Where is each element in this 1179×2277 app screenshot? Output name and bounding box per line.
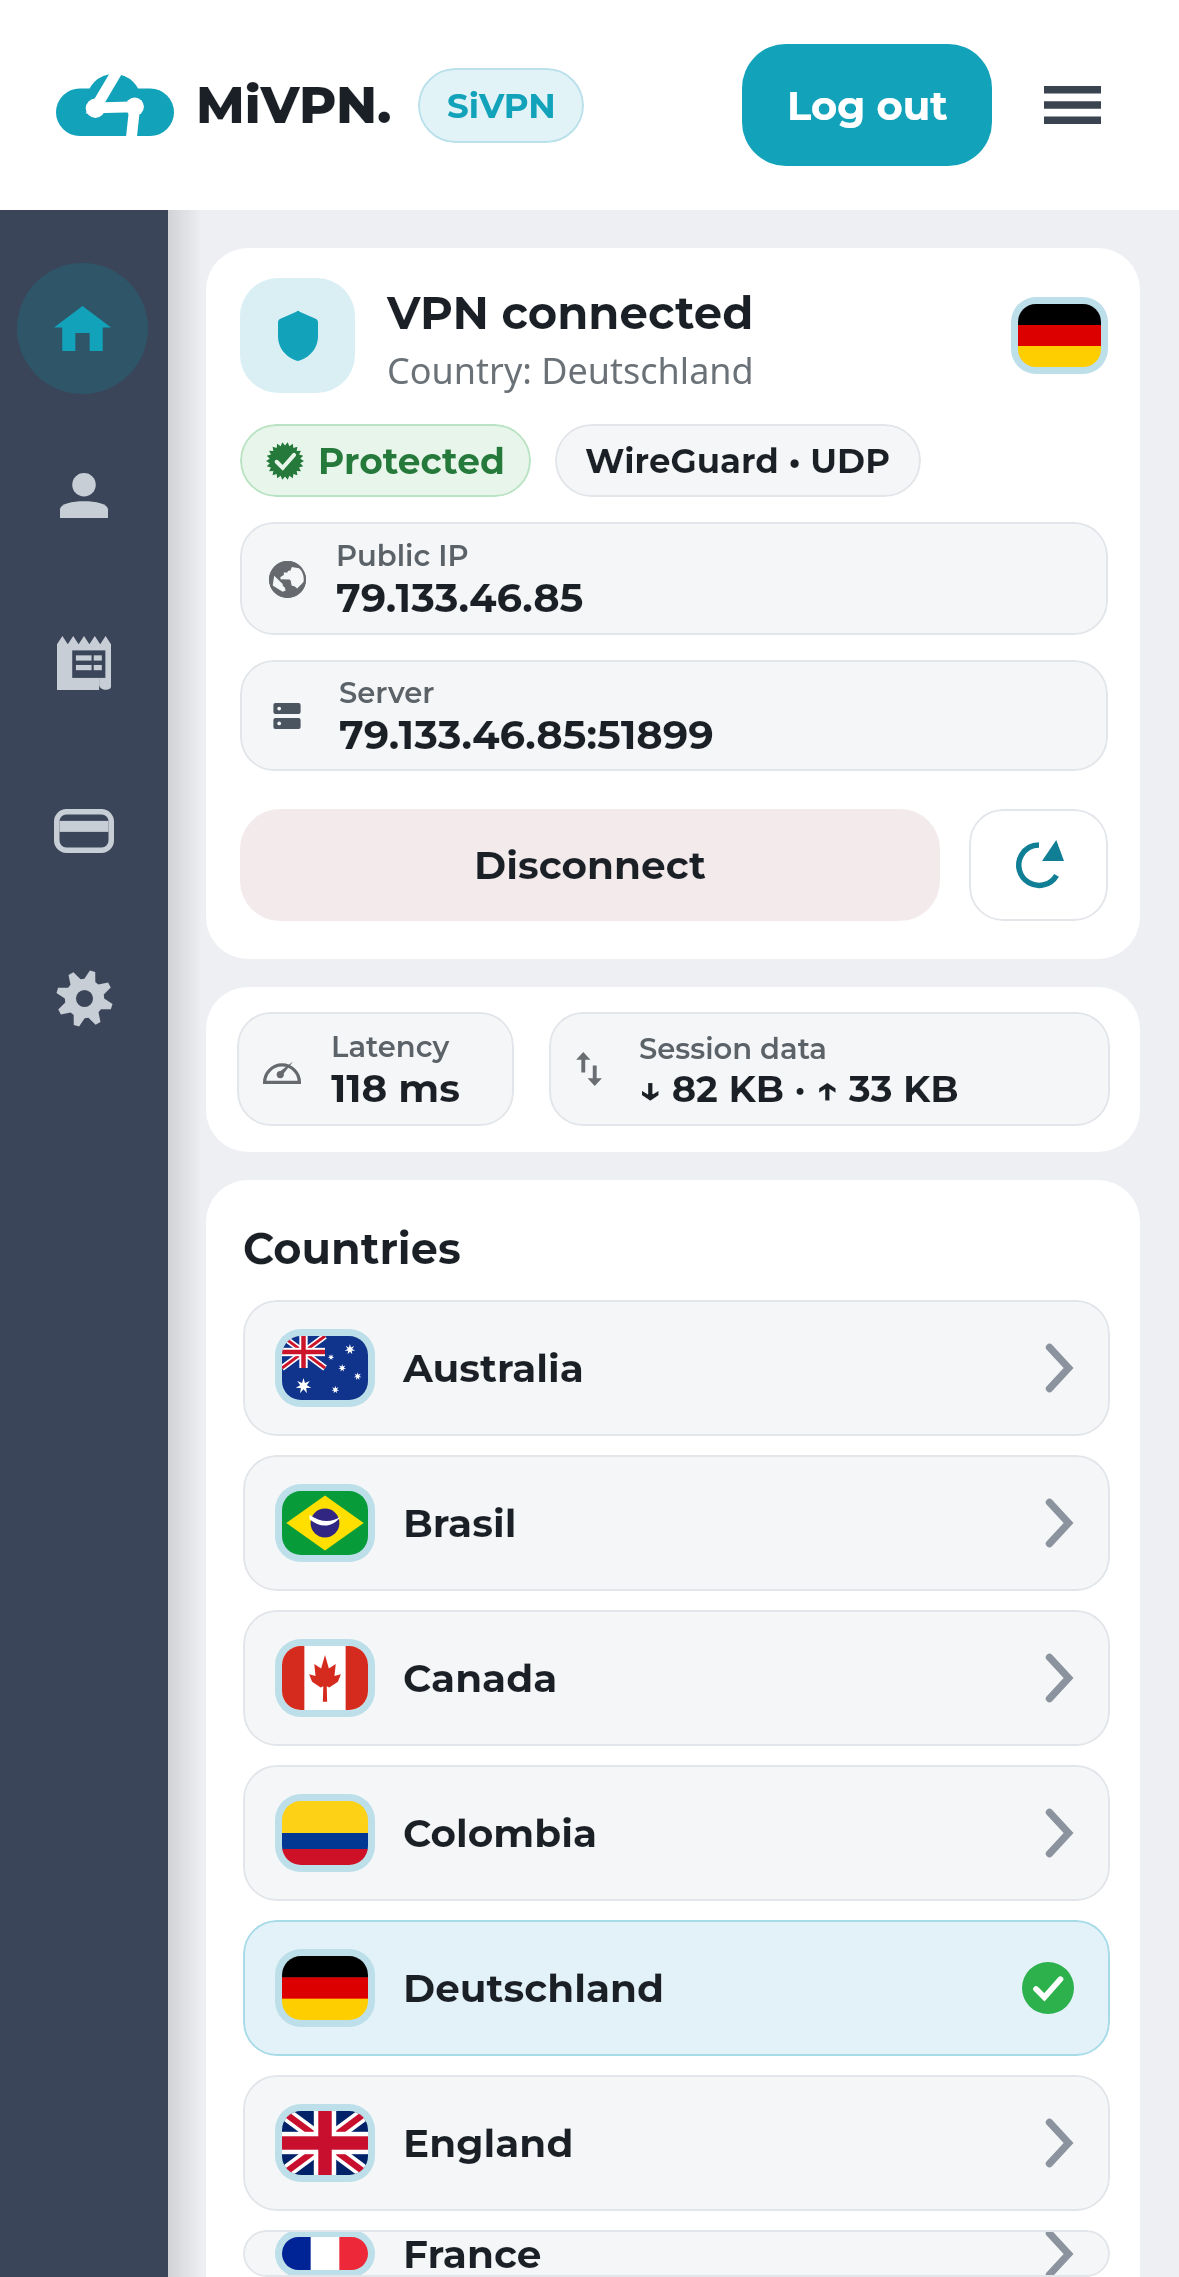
button[interactable]: France [243, 2230, 1110, 2277]
staticText: France [403, 2230, 542, 2277]
staticText: Colombia [403, 1809, 597, 1857]
button[interactable]: Session data [549, 1012, 1110, 1126]
button[interactable]: Payments [38, 785, 130, 877]
staticText: Server [339, 675, 435, 710]
staticText: Session data [639, 1031, 827, 1066]
button[interactable]: Log out [742, 44, 992, 166]
button[interactable]: Public IP [240, 522, 1108, 635]
button[interactable]: Server [240, 660, 1108, 771]
staticText: VPN connected [387, 285, 754, 340]
button[interactable]: Reconnect [969, 809, 1108, 921]
staticText: Disconnect [474, 841, 706, 889]
button[interactable]: SiVPN [418, 68, 584, 143]
button[interactable]: Australia [243, 1300, 1110, 1436]
staticText: Log out [787, 81, 948, 130]
staticText: Protected [318, 439, 505, 483]
staticText: 79.133.46.85 [336, 573, 584, 622]
button[interactable]: England [243, 2075, 1110, 2211]
staticText: Deutschland [403, 1964, 665, 2012]
staticText: England [403, 2119, 574, 2167]
staticText: Public IP [336, 538, 469, 573]
button[interactable]: Latency [237, 1012, 514, 1126]
staticText: MiVPN. [196, 74, 392, 136]
button[interactable]: Menu [1036, 69, 1108, 141]
button[interactable]: Canada [243, 1610, 1110, 1746]
button[interactable]: Protected [240, 424, 531, 497]
button[interactable]: WireGuard • UDP [555, 424, 921, 497]
button[interactable]: Disconnect [240, 809, 940, 921]
button[interactable]: Colombia [243, 1765, 1110, 1901]
staticText: Australia [403, 1344, 584, 1392]
button[interactable]: Home [17, 263, 148, 394]
button[interactable]: Deutschland [243, 1920, 1110, 2056]
staticText: Countries [243, 1222, 461, 1274]
staticText: ↓ 82 KB · ↑ 33 KB [639, 1066, 959, 1111]
staticText: WireGuard • UDP [585, 440, 891, 481]
button[interactable]: Brasil [243, 1455, 1110, 1591]
staticText: SiVPN [447, 85, 556, 126]
button[interactable]: Invoices [38, 616, 130, 708]
staticText: 79.133.46.85:51899 [339, 710, 714, 759]
staticText: Country: Deutschland [387, 346, 754, 393]
staticText: Brasil [403, 1499, 517, 1547]
staticText: 118 ms [331, 1064, 460, 1112]
button[interactable]: Settings [38, 952, 130, 1044]
staticText: Latency [331, 1029, 450, 1064]
button[interactable]: Account [38, 450, 130, 542]
staticText: Canada [403, 1654, 558, 1702]
